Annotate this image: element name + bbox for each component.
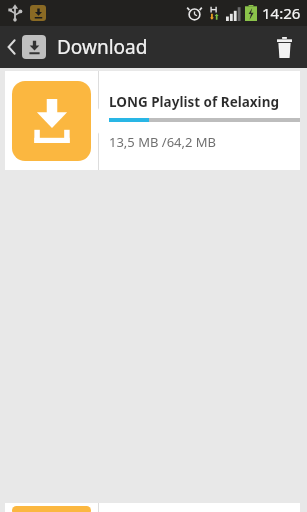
button[interactable]: Delete [261, 26, 307, 68]
button[interactable]: Navigate up, Download [0, 26, 158, 68]
button[interactable] [5, 503, 300, 512]
staticText: LONG Playlist of Relaxing Sof [109, 93, 300, 111]
button[interactable]: LONG Playlist of Relaxing Sof [5, 71, 300, 170]
staticText: 13,5 MB /64,2 MB [109, 133, 217, 151]
staticText: 14:26 [262, 3, 301, 23]
staticText: Download [57, 34, 148, 60]
